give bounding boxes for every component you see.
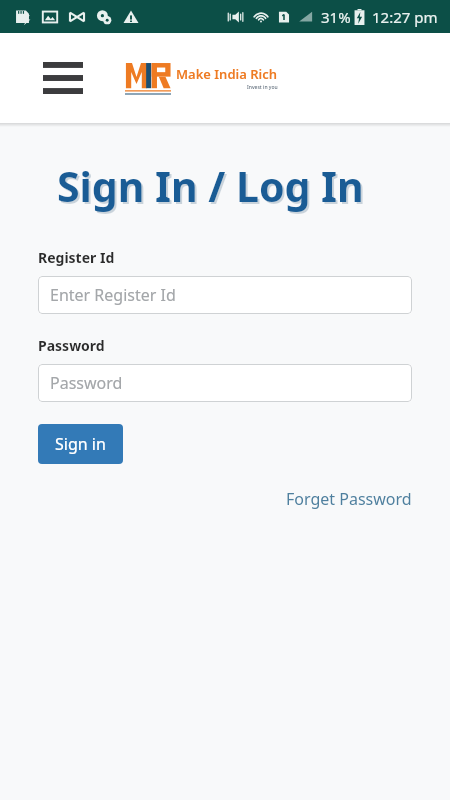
button[interactable]: Forget Password xyxy=(286,486,412,512)
staticText: Make India Rich xyxy=(176,65,278,83)
button[interactable]: Sign in xyxy=(38,424,123,464)
staticText: 12:27 pm xyxy=(372,7,438,27)
button[interactable]: Register Id field xyxy=(38,276,412,314)
staticText: Sign in xyxy=(55,433,106,455)
button[interactable]: Open navigation menu xyxy=(40,55,86,101)
staticText: Password xyxy=(38,336,105,355)
staticText: Register Id xyxy=(38,248,115,267)
staticText: Sign In / Log In xyxy=(59,160,366,216)
staticText: Password xyxy=(50,372,123,394)
button[interactable]: Make India Rich home xyxy=(125,61,278,95)
staticText: 31% xyxy=(321,7,351,27)
staticText: Enter Register Id xyxy=(50,284,176,306)
staticText: Sign In / Log In xyxy=(57,158,364,214)
staticText: Invest in you xyxy=(247,84,278,91)
staticText: Forget Password xyxy=(286,488,412,510)
button[interactable]: Password field xyxy=(38,364,412,402)
